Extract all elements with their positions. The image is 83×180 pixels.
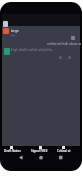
- staticText: Signal FREE: [31, 149, 48, 153]
- staticText: Engl urhelb mslhat alrdud tlq: [11, 48, 53, 52]
- button[interactable]: large: [2, 26, 80, 44]
- button[interactable]: mrhba kef halk alimw sa: [2, 42, 80, 62]
- staticText: mrhba kef halk alimw sa: [47, 42, 82, 46]
- button[interactable]: Signal FREE: [28, 145, 48, 155]
- staticText: Draft Notes: [4, 149, 21, 153]
- staticText: Critical st: [57, 149, 71, 153]
- staticText: large: [11, 29, 19, 33]
- button[interactable]: Critical st: [55, 145, 77, 155]
- button[interactable]: Draft Notes: [2, 145, 26, 155]
